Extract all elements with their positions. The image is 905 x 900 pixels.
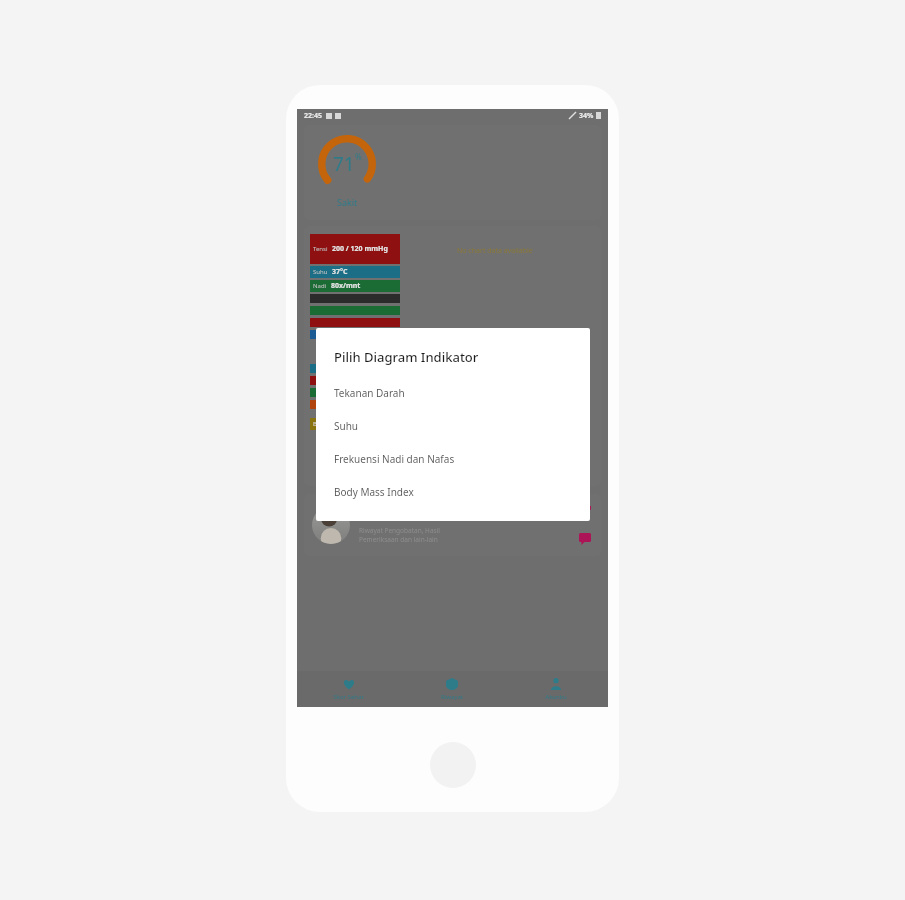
staticText: Suhu: [334, 419, 359, 433]
button[interactable]: Suhu: [334, 419, 574, 433]
button[interactable]: Chat: [577, 531, 593, 547]
button[interactable]: Skor Sehat: [297, 671, 400, 707]
button[interactable]: Body Mass Index: [334, 485, 574, 499]
button[interactable]: Akunku: [504, 671, 608, 707]
staticText: Pilih Diagram Indikator: [334, 348, 479, 366]
button[interactable]: 71: [304, 125, 601, 220]
staticText: No chart data available: [457, 246, 533, 256]
staticText: Akunku: [545, 693, 567, 701]
staticText: Nadi: [313, 282, 327, 290]
staticText: Sakit: [337, 196, 358, 208]
staticText: Riwayat: [441, 693, 463, 701]
button[interactable]: Tekanan Darah: [334, 386, 574, 400]
staticText: 34%: [579, 111, 594, 121]
staticText: Tensi: [313, 245, 328, 253]
staticText: 22:45: [304, 111, 322, 121]
staticText: %: [355, 151, 362, 162]
staticText: Frekuensi Nadi dan Nafas: [334, 452, 455, 466]
staticText: 200 / 120 mmHg: [332, 244, 388, 254]
staticText: Tekanan Darah: [334, 386, 405, 400]
button[interactable]: Frekuensi Nadi dan Nafas: [334, 452, 574, 466]
button[interactable]: Prisei Harianto: [304, 494, 601, 556]
staticText: 71: [333, 151, 355, 177]
staticText: Skor Sehat: [333, 693, 364, 701]
button[interactable]: Tensi: [304, 226, 601, 486]
button[interactable]: Home: [430, 742, 476, 788]
staticText: Body Mass Index: [334, 485, 414, 499]
button[interactable]: QR Code: [577, 503, 593, 519]
staticText: Prisei Harianto: [359, 507, 441, 522]
staticText: Suhu: [313, 268, 328, 276]
staticText: Riwayat Pengobatan, Hasil Pemeriksaan da…: [359, 526, 441, 544]
staticText: 80x/mnt: [331, 281, 361, 291]
staticText: BMI 30 kg/m²: [310, 420, 355, 428]
button[interactable]: Riwayat: [400, 671, 504, 707]
staticText: 37°C: [332, 267, 348, 277]
